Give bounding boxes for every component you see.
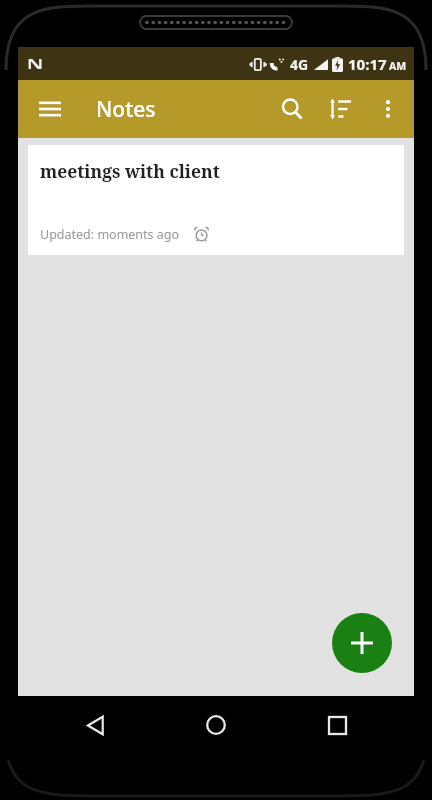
button[interactable]: Search [268, 85, 316, 133]
staticText: meetings with client [40, 159, 220, 183]
button[interactable]: Recent apps [311, 699, 363, 751]
staticText: 4G [290, 55, 309, 74]
button[interactable]: Add note [332, 613, 392, 673]
button[interactable]: Home [190, 699, 242, 751]
staticText: AM [389, 59, 407, 73]
staticText: Updated: moments ago [40, 226, 180, 243]
button[interactable]: Back [69, 699, 121, 751]
button[interactable]: Sort [316, 85, 364, 133]
button[interactable]: More options [364, 85, 412, 133]
staticText: 10:17 [348, 54, 387, 74]
button[interactable]: meetings with client [28, 145, 404, 255]
staticText: Notes [96, 95, 156, 124]
button[interactable]: Open navigation drawer [26, 85, 74, 133]
